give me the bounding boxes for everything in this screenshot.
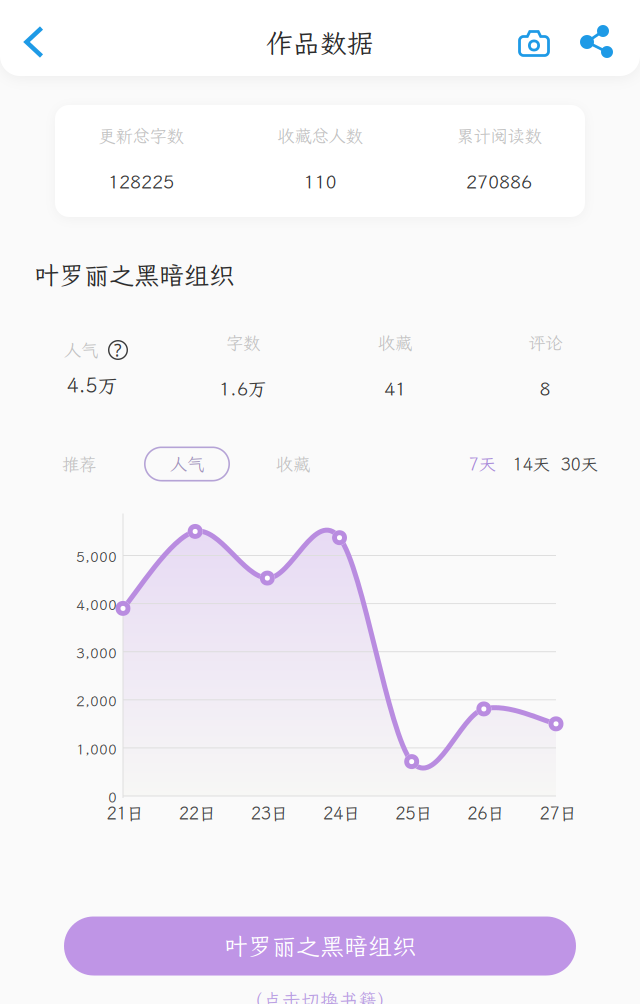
staticText: 22日: [179, 802, 216, 824]
staticText: 24日: [323, 802, 360, 824]
staticText: 1.6万: [219, 376, 267, 401]
staticText: （点击切换书籍）: [244, 988, 396, 1004]
staticText: 人气: [170, 453, 204, 475]
staticText: 25日: [395, 802, 432, 824]
button[interactable]: 人气: [144, 446, 230, 481]
staticText: 更新总字数: [98, 124, 183, 147]
staticText: 字数: [226, 331, 260, 354]
button[interactable]: 30天: [557, 446, 601, 481]
staticText: 叶罗丽之黑暗组织: [224, 930, 416, 962]
staticText: 叶罗丽之黑暗组织: [34, 258, 234, 292]
staticText: ?: [114, 338, 122, 361]
staticText: 4.5万: [66, 372, 117, 398]
staticText: 收藏: [276, 453, 310, 475]
staticText: 30天: [560, 453, 597, 475]
staticText: 14天: [512, 453, 549, 475]
button[interactable]: Camera: [508, 17, 560, 69]
staticText: 2,000: [76, 691, 117, 710]
staticText: 0: [108, 787, 117, 807]
staticText: 110: [303, 169, 336, 194]
button[interactable]: 14天: [509, 446, 553, 481]
staticText: 8: [539, 376, 550, 401]
button[interactable]: 叶罗丽之黑暗组织: [64, 916, 576, 975]
staticText: 3,000: [76, 643, 117, 662]
button[interactable]: 推荐: [36, 446, 122, 481]
staticText: 23日: [251, 802, 288, 824]
staticText: 5,000: [76, 547, 117, 566]
button[interactable]: 收藏: [250, 446, 336, 481]
staticText: 推荐: [62, 453, 96, 475]
staticText: 收藏总人数: [277, 124, 362, 147]
button[interactable]: Share: [571, 16, 623, 68]
staticText: 4,000: [76, 595, 117, 614]
staticText: 人气: [64, 339, 98, 361]
staticText: 作品数据: [266, 25, 374, 60]
staticText: 7天: [468, 453, 495, 475]
staticText: 1,000: [76, 739, 117, 758]
staticText: 累计阅读数: [456, 124, 541, 147]
staticText: 128225: [108, 169, 174, 194]
staticText: 27日: [539, 802, 576, 824]
staticText: 评论: [528, 331, 562, 354]
staticText: 收藏: [378, 331, 412, 354]
button[interactable]: Back: [5, 12, 63, 72]
button[interactable]: 7天: [464, 446, 500, 481]
staticText: 21日: [106, 802, 143, 824]
staticText: 26日: [467, 802, 504, 824]
staticText: 41: [384, 376, 406, 401]
staticText: 270886: [466, 169, 532, 194]
